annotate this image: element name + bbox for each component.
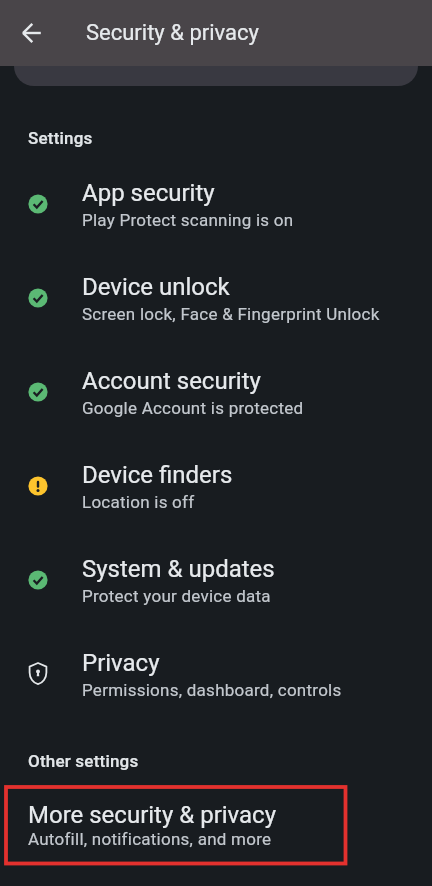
staticText: Security & privacy (86, 20, 259, 46)
staticText: Device unlock (82, 273, 230, 301)
staticText: Protect your device data (82, 586, 271, 606)
staticText: App security (82, 179, 215, 207)
button[interactable]: System & updates (0, 533, 432, 627)
staticText: Settings (28, 128, 93, 148)
staticText: Screen lock, Face & Fingerprint Unlock (82, 304, 380, 324)
button[interactable]: Device unlock (0, 251, 432, 345)
button[interactable]: Privacy (0, 627, 432, 721)
button[interactable]: Device finders (0, 439, 432, 533)
button[interactable]: More security & privacy (0, 801, 432, 849)
button[interactable]: App security (0, 157, 432, 251)
staticText: Other settings (28, 751, 139, 771)
staticText: Play Protect scanning is on (82, 210, 294, 230)
staticText: Permissions, dashboard, controls (82, 680, 342, 700)
button[interactable] (21, 21, 45, 45)
staticText: System & updates (82, 555, 275, 583)
staticText: More security & privacy (28, 801, 277, 829)
staticText: Autofill, notifications, and more (28, 829, 272, 849)
staticText: Privacy (82, 649, 160, 677)
staticText: Device finders (82, 461, 233, 489)
staticText: Google Account is protected (82, 398, 304, 418)
staticText: Account security (82, 367, 261, 395)
button[interactable]: Account security (0, 345, 432, 439)
staticText: Location is off (82, 492, 195, 512)
